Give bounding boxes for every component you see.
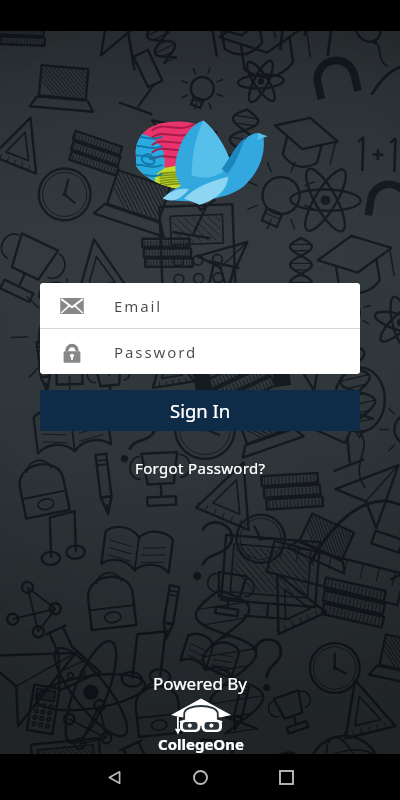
staticText: Powered By bbox=[153, 672, 248, 695]
button[interactable]: Forgot Password? bbox=[125, 454, 276, 482]
button[interactable]: Email bbox=[40, 283, 360, 328]
button[interactable]: Home bbox=[178, 755, 222, 799]
staticText: Password bbox=[114, 342, 198, 362]
staticText: Email bbox=[114, 296, 163, 316]
button[interactable]: Recent apps bbox=[264, 755, 308, 799]
staticText: Sign In bbox=[170, 398, 231, 423]
button[interactable]: Back bbox=[92, 755, 136, 799]
staticText: Forgot Password? bbox=[135, 458, 266, 478]
button[interactable]: Password bbox=[40, 329, 360, 374]
button[interactable]: Sign In bbox=[40, 390, 360, 431]
staticText: CollegeOne bbox=[158, 734, 244, 754]
